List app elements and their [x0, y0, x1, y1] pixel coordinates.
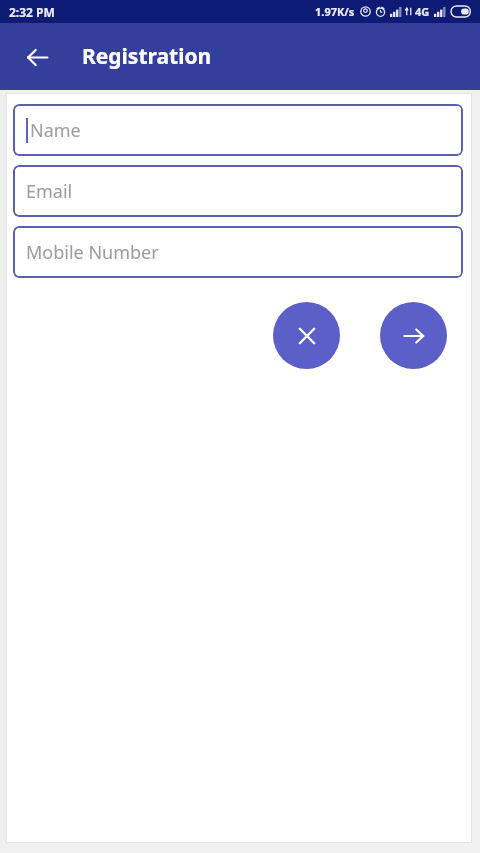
button[interactable]: Clear: [273, 302, 340, 369]
button[interactable]: Name: [13, 104, 463, 156]
staticText: 1.97K/s: [315, 4, 355, 19]
button[interactable]: Back: [14, 34, 60, 80]
staticText: Email: [26, 179, 73, 204]
staticText: 4G: [415, 4, 430, 19]
button[interactable]: Next: [380, 302, 447, 369]
staticText: Registration: [82, 42, 212, 71]
staticText: Mobile Number: [26, 240, 159, 265]
button[interactable]: Email: [13, 165, 463, 217]
button[interactable]: Mobile Number: [13, 226, 463, 278]
staticText: 2:32 PM: [9, 4, 55, 20]
staticText: Name: [30, 118, 81, 143]
